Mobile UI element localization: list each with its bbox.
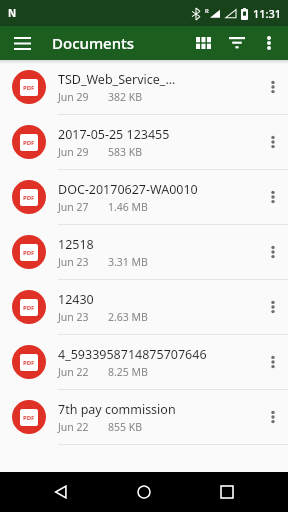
button[interactable]: More options for TSD_Web_Service_…haar_L… (258, 67, 288, 107)
staticText: Jun 23 (58, 255, 108, 269)
button[interactable]: Open navigation drawer (6, 27, 38, 59)
staticText: Jun 23 (58, 310, 108, 324)
button[interactable]: PDF (0, 335, 288, 390)
button[interactable]: Back (39, 472, 83, 512)
button[interactable]: More options for 7th pay commission (258, 397, 288, 437)
staticText: PDF (23, 304, 35, 312)
staticText: PDF (23, 414, 35, 422)
staticText: PDF (23, 359, 35, 367)
button[interactable]: More options (254, 28, 284, 58)
staticText: PDF (23, 249, 35, 257)
staticText: PDF (23, 84, 35, 92)
staticText: DOC-20170627-WA0010 (58, 181, 198, 198)
staticText: 11:31 (253, 6, 282, 21)
staticText: 12430 (58, 291, 94, 308)
button[interactable]: PDF (0, 115, 288, 170)
button[interactable]: PDF (0, 390, 288, 445)
button[interactable]: More options for 12518 (258, 232, 288, 272)
staticText: 3.31 MB (108, 255, 148, 269)
staticText: PDF (23, 194, 35, 202)
staticText: Jun 22 (58, 420, 108, 434)
button[interactable]: Sort and filter (220, 26, 254, 60)
staticText: 4_5933958714875707646 (58, 346, 207, 363)
button[interactable]: PDF (0, 60, 288, 115)
staticText: 2.63 MB (108, 310, 148, 324)
staticText: Jun 29 (58, 145, 108, 159)
staticText: Jun 29 (58, 90, 108, 104)
staticText: 382 KB (108, 90, 143, 104)
staticText: 8.25 MB (108, 365, 148, 379)
button[interactable]: More options for 4_5933958714875707646 (258, 342, 288, 382)
staticText: N (8, 6, 17, 20)
button[interactable]: PDF (0, 280, 288, 335)
staticText: 12518 (58, 236, 94, 253)
button[interactable]: PDF (0, 225, 288, 280)
staticText: Documents (52, 33, 135, 53)
staticText: Jun 27 (58, 200, 108, 214)
staticText: 2017-05-25 123455 (58, 126, 170, 143)
staticText: TSD_Web_Service_…haar_Lookup_API (58, 71, 258, 88)
staticText: 7th pay commission (58, 401, 176, 418)
staticText: 583 KB (108, 145, 143, 159)
staticText: PDF (23, 139, 35, 147)
button[interactable]: More options for 2017-05-25 123455 (258, 122, 288, 162)
button[interactable]: PDF (0, 170, 288, 225)
staticText: 1.46 MB (108, 200, 148, 214)
button[interactable]: Home (122, 472, 166, 512)
staticText: 855 KB (108, 420, 143, 434)
button[interactable]: Recent apps (205, 472, 249, 512)
button[interactable]: Grid view (186, 26, 220, 60)
staticText: R (205, 7, 209, 15)
button[interactable]: More options for 12430 (258, 287, 288, 327)
button[interactable]: More options for DOC-20170627-WA0010 (258, 177, 288, 217)
staticText: Jun 22 (58, 365, 108, 379)
